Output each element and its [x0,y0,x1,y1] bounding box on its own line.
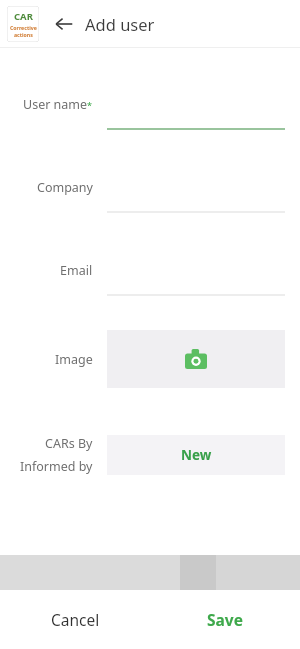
staticText: CAR [14,10,33,23]
staticText: actions [14,31,33,38]
button[interactable]: Take photo [107,330,285,388]
button[interactable]: User name* [0,96,300,130]
staticText: Save [207,609,243,630]
button[interactable]: Back [49,9,79,39]
staticText: Email [60,262,93,279]
button[interactable]: Cancel [0,590,150,649]
staticText: Informed by [20,458,93,475]
staticText: Corrective [10,24,37,31]
button[interactable]: Save [150,590,300,649]
button[interactable]: Email [0,262,300,296]
button[interactable]: New [107,435,285,475]
staticText: New [181,446,212,464]
staticText: Image [55,351,93,368]
staticText: User name* [23,96,93,113]
staticText: Add user [85,13,155,35]
staticText: CARs By [45,435,93,452]
button[interactable]: CAR Corrective actions logo [7,6,39,42]
staticText: Cancel [51,609,100,630]
button[interactable]: Company [0,179,300,213]
staticText: Company [37,179,93,196]
